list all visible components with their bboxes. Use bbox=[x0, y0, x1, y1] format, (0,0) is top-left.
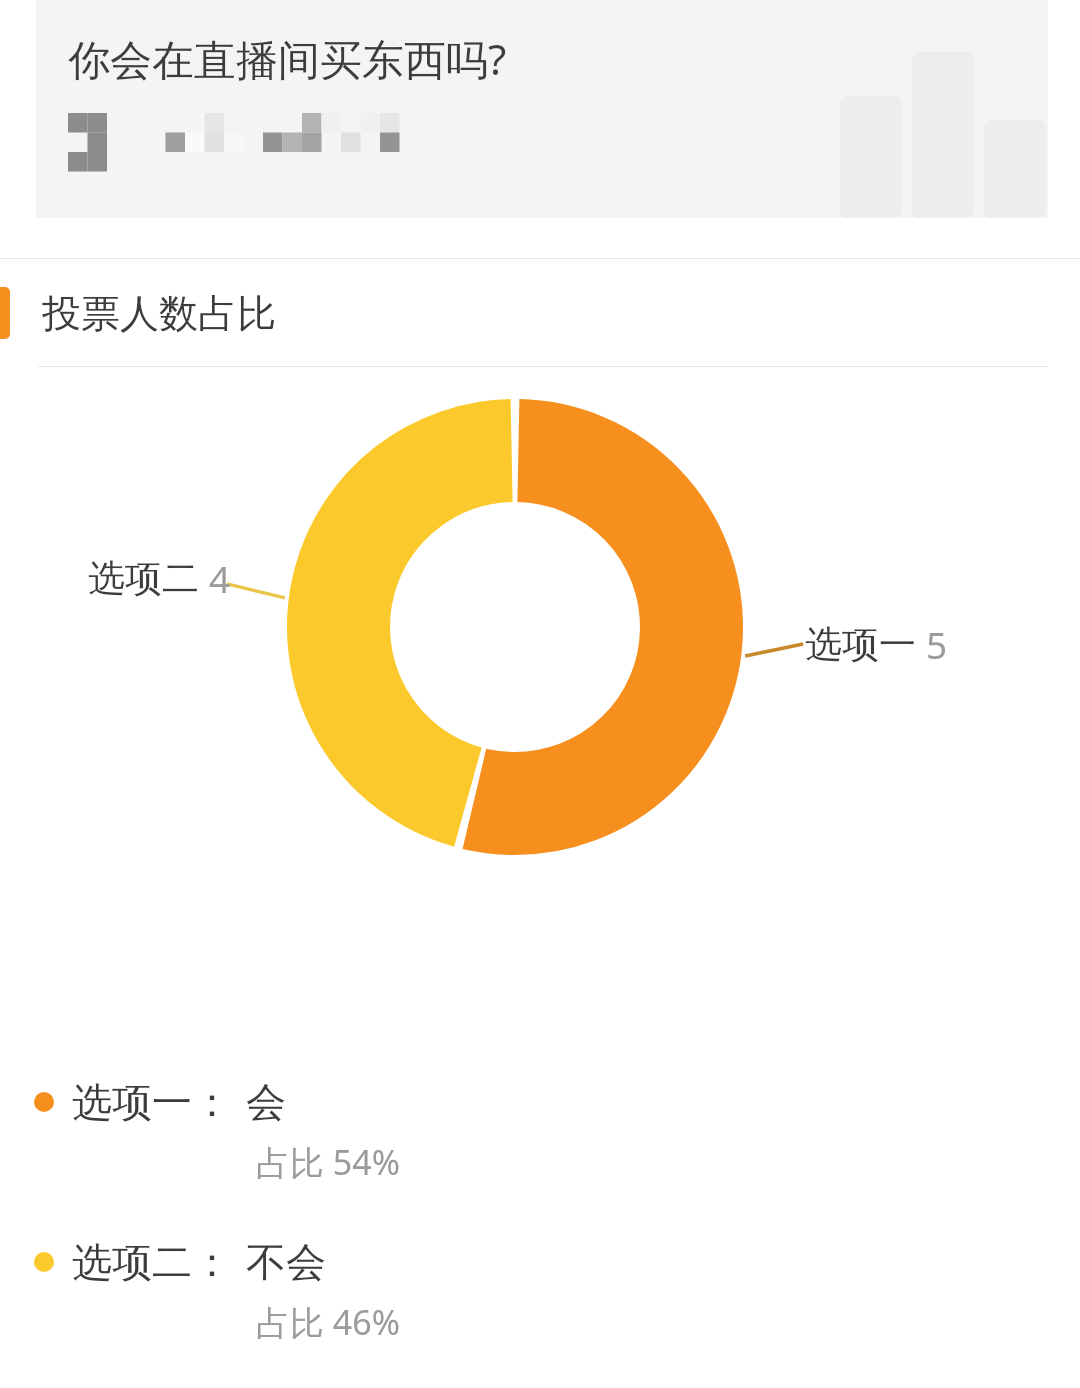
staticText: 你会在直播间买东西吗? bbox=[68, 30, 507, 87]
staticText: 选项二 bbox=[88, 555, 199, 602]
staticText: 占比 46% bbox=[256, 1299, 400, 1345]
staticText: 选项一 bbox=[805, 621, 916, 668]
staticText: 5 bbox=[926, 619, 948, 669]
other: 投票占比环形图 bbox=[0, 367, 1080, 1077]
staticText: 占比 54% bbox=[256, 1139, 400, 1185]
staticText: 会 bbox=[246, 1077, 286, 1127]
button[interactable]: 选项二： bbox=[0, 1237, 1080, 1345]
staticText: 4 bbox=[209, 553, 231, 603]
staticText: 投票人数占比 bbox=[42, 289, 276, 338]
staticText: 选项二： bbox=[72, 1237, 232, 1287]
staticText: 不会 bbox=[246, 1237, 326, 1287]
button[interactable]: 选项一： bbox=[0, 1077, 1080, 1185]
button[interactable]: 你会在直播间买东西吗? bbox=[36, 0, 1048, 218]
button[interactable]: 投票人数占比 bbox=[0, 259, 1080, 367]
staticText: 选项一： bbox=[72, 1077, 232, 1127]
